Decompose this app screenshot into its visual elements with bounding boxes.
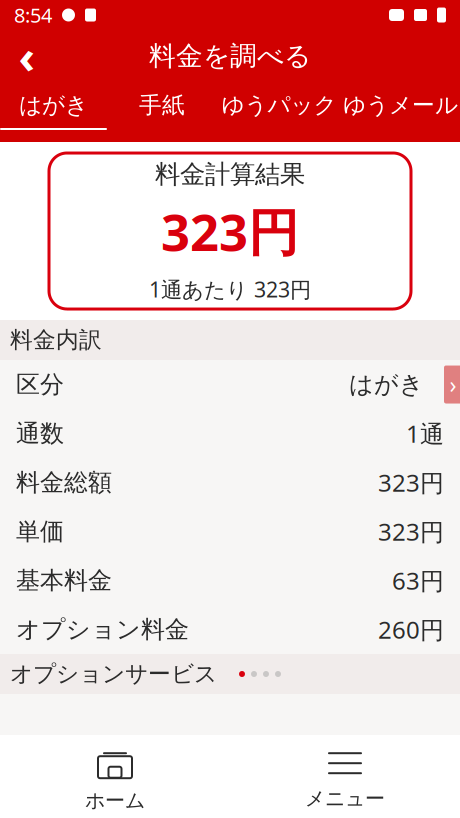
staticText: オプション料金 [16,615,189,644]
staticText: 手紙 [139,91,185,119]
staticText: 通数 [16,419,64,448]
staticText: 料金を調べる [149,40,311,72]
button[interactable]: 区分 [0,360,460,409]
staticText: 単価 [16,517,64,546]
button[interactable]: 通数 [0,409,460,458]
button[interactable]: 基本料金 [0,556,460,605]
button[interactable]: ゆうパック [217,82,341,130]
staticText: 260円 [378,614,444,645]
staticText: 323円 [378,467,444,498]
button[interactable]: 料金総額 [0,458,460,507]
staticText: ‹ [18,26,35,86]
button[interactable]: オプション料金 [0,605,460,654]
button[interactable]: ゆうメール [341,82,460,130]
staticText: 料金総額 [16,468,112,497]
button[interactable]: 戻る [0,32,54,80]
staticText: ゆうメール [343,91,458,119]
staticText: 8:54 [14,2,52,28]
staticText: はがき [19,91,88,119]
staticText: ゆうパック [221,91,336,119]
button[interactable]: 単価 [0,507,460,556]
staticText: 63円 [392,565,444,596]
staticText: オプションサービス [10,660,217,688]
staticText: 料金内訳 [10,326,102,354]
staticText: › [449,369,456,399]
staticText: はがき [349,370,424,399]
staticText: 1通あたり 323円 [149,275,311,303]
button[interactable]: はがき [0,82,107,130]
staticText: 1通 [406,418,444,449]
staticText: ホーム [85,788,145,813]
staticText: 323円 [378,516,444,547]
staticText: 基本料金 [16,566,112,595]
button[interactable]: 手紙 [107,82,217,130]
button[interactable]: ホーム [0,735,230,818]
staticText: 料金計算結果 [155,159,305,190]
button[interactable]: メニュー [230,735,460,818]
staticText: 323円 [161,198,299,265]
staticText: 区分 [16,370,64,399]
staticText: メニュー [305,786,385,811]
